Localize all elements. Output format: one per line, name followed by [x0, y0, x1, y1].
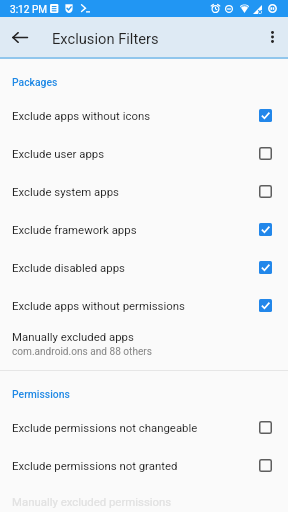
button[interactable]: Exclude permissions not changeable	[0, 408, 288, 446]
staticText: Manually excluded apps	[12, 330, 134, 343]
button[interactable]: Manually excluded apps	[0, 324, 288, 366]
staticText: Exclude permissions not granted	[12, 459, 178, 472]
staticText: com.android.ons and 88 others	[12, 346, 152, 358]
staticText: Permissions	[12, 388, 70, 400]
button[interactable]: Manually excluded permissions	[0, 489, 288, 512]
staticText: Packages	[12, 76, 58, 88]
button[interactable]: Navigate up	[3, 20, 37, 54]
button[interactable]: More options	[255, 20, 288, 54]
button[interactable]: Exclude user apps	[0, 134, 288, 172]
staticText: Exclude system apps	[12, 185, 119, 198]
button[interactable]: Exclude apps without permissions	[0, 286, 288, 324]
button[interactable]: Exclude apps without icons	[0, 96, 288, 134]
staticText: Exclude framework apps	[12, 223, 137, 236]
staticText: Exclude permissions not changeable	[12, 421, 198, 434]
button[interactable]: Exclude system apps	[0, 172, 288, 210]
staticText: Exclusion Filters	[52, 30, 159, 47]
button[interactable]: Exclude framework apps	[0, 210, 288, 248]
button[interactable]: Exclude disabled apps	[0, 248, 288, 286]
staticText: Exclude user apps	[12, 147, 105, 160]
staticText: 3:12 PM	[10, 4, 48, 16]
staticText: Exclude apps without icons	[12, 109, 151, 122]
staticText: Exclude disabled apps	[12, 261, 125, 274]
staticText: Manually excluded permissions	[12, 495, 172, 508]
button[interactable]: Exclude permissions not granted	[0, 446, 288, 484]
staticText: Exclude apps without permissions	[12, 299, 185, 312]
